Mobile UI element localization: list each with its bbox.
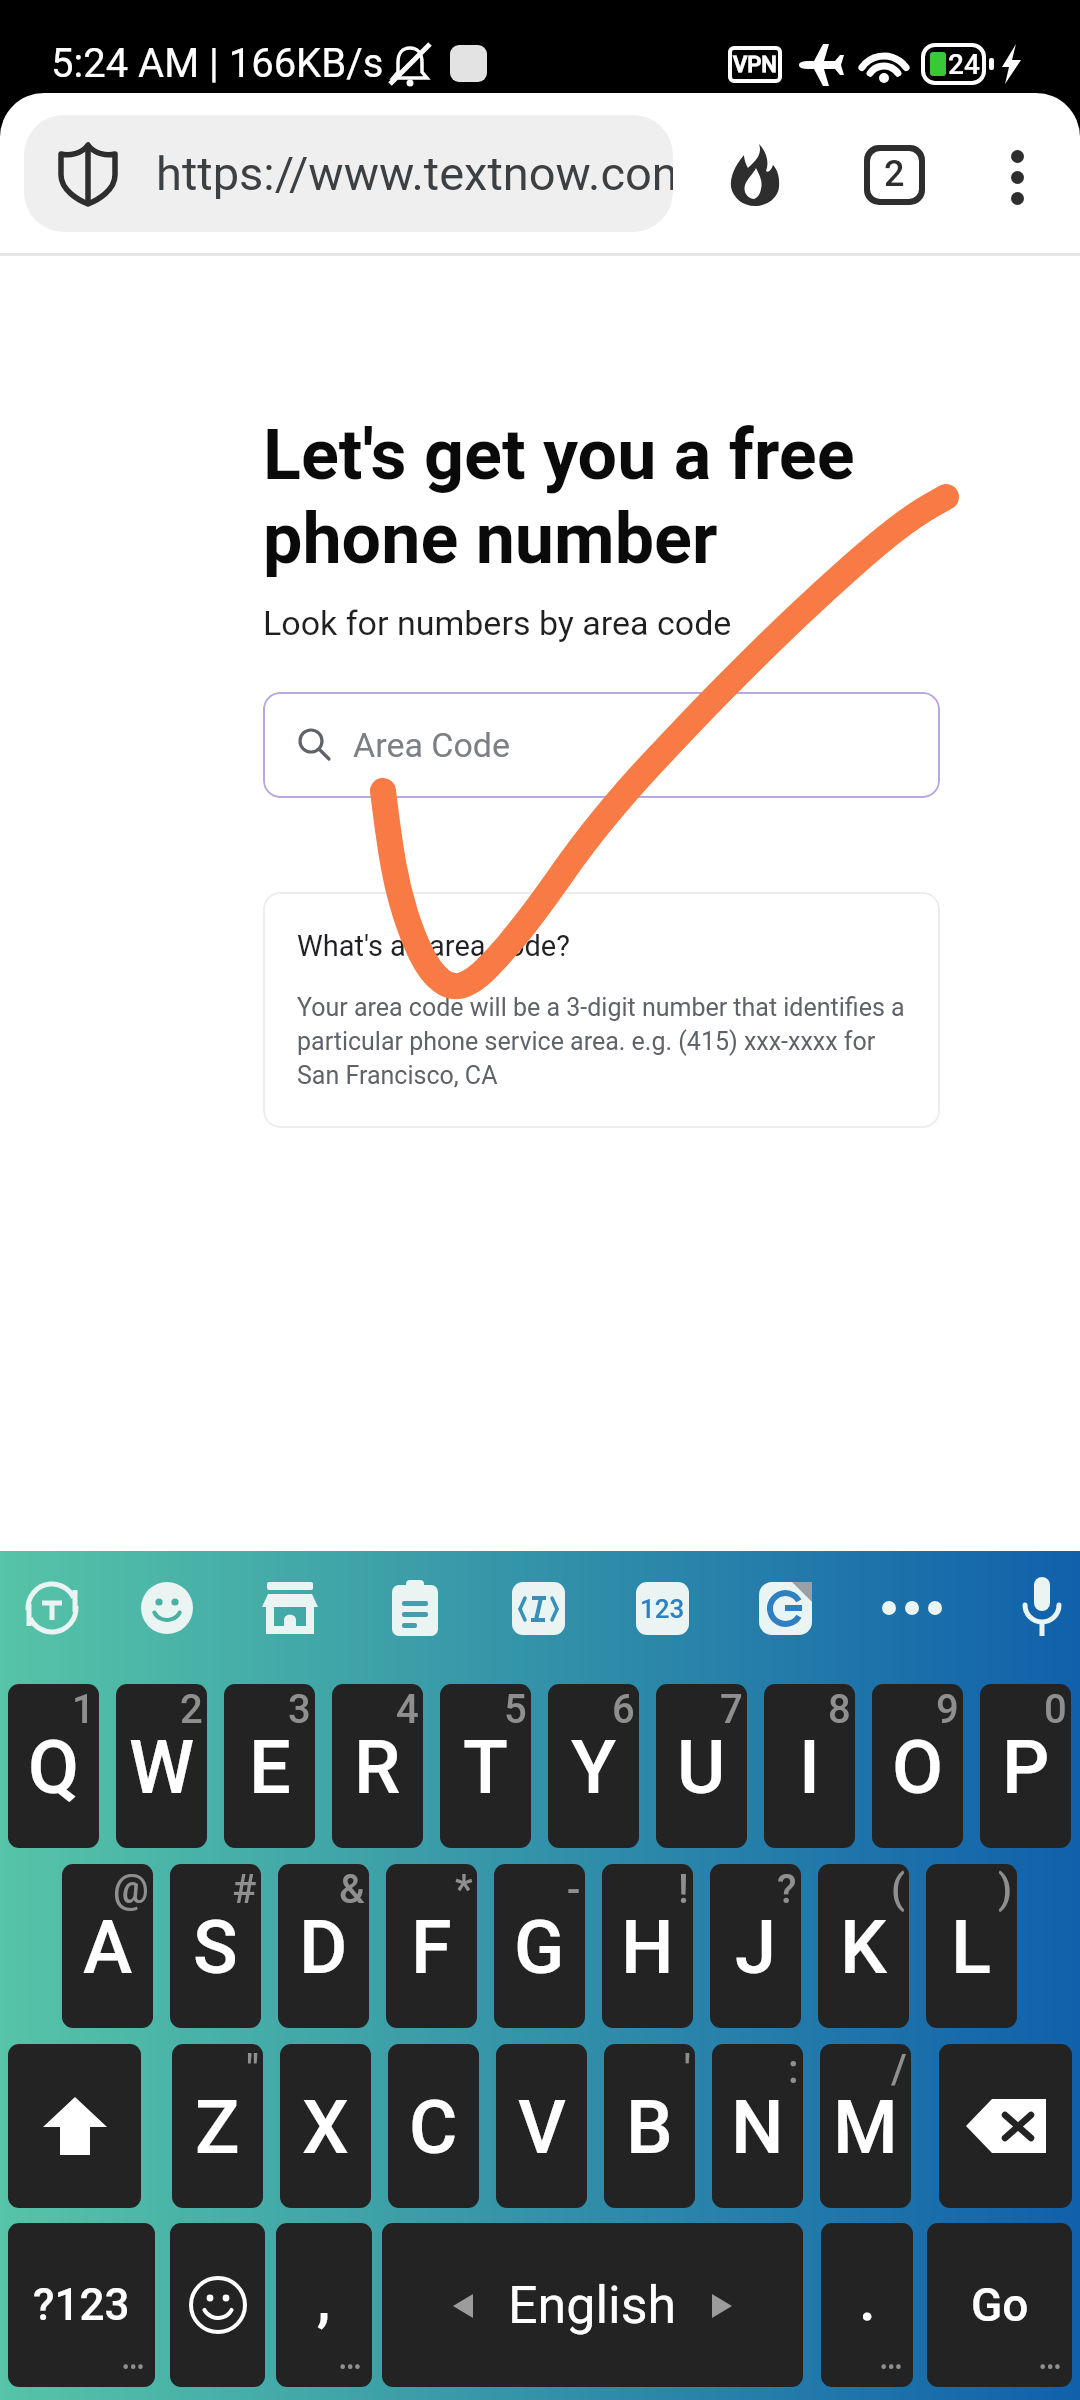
- button[interactable]: 0: [980, 1684, 1071, 1848]
- staticText: 9: [936, 1686, 959, 1733]
- button[interactable]: Store: [234, 1552, 346, 1664]
- staticText: 1: [72, 1686, 95, 1733]
- button[interactable]: 1: [8, 1684, 99, 1848]
- button[interactable]: ,: [276, 2223, 372, 2387]
- button[interactable]: ?: [710, 1864, 801, 2028]
- staticText: Q: [28, 1724, 80, 1811]
- staticText: 24: [948, 48, 980, 81]
- staticText: #: [232, 1866, 257, 1913]
- staticText: X: [302, 2084, 349, 2171]
- staticText: Let's get you a free phone number: [263, 414, 855, 580]
- button[interactable]: -: [494, 1864, 585, 2028]
- staticText: B: [626, 2084, 673, 2171]
- staticText: D: [299, 1904, 348, 1991]
- button[interactable]: Area Code: [263, 692, 940, 798]
- button[interactable]: 5: [440, 1684, 531, 1848]
- button[interactable]: More: [856, 1552, 968, 1664]
- staticText: 2: [884, 153, 905, 195]
- button[interactable]: 3: [224, 1684, 315, 1848]
- button[interactable]: 9: [872, 1684, 963, 1848]
- staticText: K: [840, 1904, 887, 1991]
- staticText: ): [998, 1866, 1013, 1913]
- button[interactable]: (: [818, 1864, 909, 2028]
- button[interactable]: Text editing: [482, 1552, 594, 1664]
- staticText: E: [249, 1724, 291, 1811]
- staticText: O: [892, 1724, 944, 1811]
- button[interactable]: Emoji keyboard: [170, 2223, 265, 2387]
- button[interactable]: ): [926, 1864, 1017, 2028]
- button[interactable]: :: [712, 2044, 803, 2208]
- staticText: 4: [396, 1686, 419, 1733]
- staticText: ?123: [33, 2279, 130, 2331]
- button[interactable]: 7: [656, 1684, 747, 1848]
- staticText: S: [193, 1904, 238, 1991]
- staticText: N: [731, 2084, 784, 2171]
- button[interactable]: #: [170, 1864, 261, 2028]
- button[interactable]: English: [382, 2223, 803, 2387]
- button[interactable]: C: [388, 2044, 479, 2208]
- button[interactable]: 8: [764, 1684, 855, 1848]
- button[interactable]: Backspace: [939, 2044, 1072, 2208]
- staticText: Z: [195, 2084, 240, 2171]
- staticText: ,: [317, 2264, 331, 2334]
- staticText: •••: [880, 2355, 903, 2381]
- button[interactable]: 6: [548, 1684, 639, 1848]
- button[interactable]: More options: [961, 121, 1073, 233]
- staticText: :: [788, 2046, 799, 2093]
- button[interactable]: Turbo mode: [699, 119, 811, 231]
- button[interactable]: !: [602, 1864, 693, 2028]
- button[interactable]: V: [496, 2044, 587, 2208]
- button[interactable]: /: [820, 2044, 911, 2208]
- staticText: •••: [1039, 2355, 1062, 2381]
- staticText: 3: [288, 1686, 311, 1733]
- button[interactable]: &: [278, 1864, 369, 2028]
- staticText: L: [951, 1904, 992, 1991]
- staticText: 0: [1044, 1686, 1067, 1733]
- staticText: *: [455, 1866, 473, 1913]
- button[interactable]: Switch tabs: [838, 119, 950, 231]
- button[interactable]: Theme: [0, 1552, 108, 1664]
- staticText: 2: [180, 1686, 203, 1733]
- staticText: 6: [612, 1686, 635, 1733]
- staticText: &: [339, 1866, 365, 1913]
- staticText: G: [514, 1904, 565, 1991]
- button[interactable]: ": [172, 2044, 263, 2208]
- staticText: https://www.textnow.con: [156, 146, 673, 201]
- button[interactable]: ': [604, 2044, 695, 2208]
- staticText: -: [567, 1866, 581, 1913]
- staticText: (: [891, 1866, 905, 1913]
- staticText: F: [411, 1904, 452, 1991]
- staticText: P: [1002, 1724, 1050, 1811]
- button[interactable]: ?123: [8, 2223, 155, 2387]
- staticText: @: [113, 1866, 149, 1913]
- staticText: 7: [720, 1686, 743, 1733]
- button[interactable]: 2: [116, 1684, 207, 1848]
- staticText: What's an area code?: [297, 929, 570, 963]
- staticText: English: [508, 2275, 677, 2336]
- staticText: W: [129, 1724, 195, 1811]
- staticText: ": [246, 2046, 259, 2093]
- staticText: VPN: [733, 52, 777, 78]
- button[interactable]: Numbers: [606, 1552, 718, 1664]
- button[interactable]: Clipboard: [359, 1552, 471, 1664]
- button[interactable]: Translate: [729, 1552, 841, 1664]
- button[interactable]: 4: [332, 1684, 423, 1848]
- button[interactable]: Shift: [8, 2044, 141, 2208]
- staticText: !: [678, 1866, 689, 1913]
- staticText: •••: [339, 2355, 362, 2381]
- button[interactable]: .: [821, 2223, 913, 2387]
- button[interactable]: Voice input: [986, 1552, 1080, 1664]
- staticText: C: [409, 2084, 458, 2171]
- staticText: Y: [571, 1724, 617, 1811]
- staticText: A: [83, 1904, 133, 1991]
- button[interactable]: Go: [927, 2223, 1072, 2387]
- staticText: Go: [971, 2278, 1029, 2332]
- staticText: 123: [640, 1594, 685, 1624]
- staticText: J: [735, 1904, 777, 1991]
- button[interactable]: Emoji: [111, 1552, 223, 1664]
- staticText: Your area code will be a 3-digit number …: [297, 993, 911, 1090]
- button[interactable]: https://www.textnow.con: [24, 115, 673, 232]
- button[interactable]: *: [386, 1864, 477, 2028]
- button[interactable]: @: [62, 1864, 153, 2028]
- button[interactable]: X: [280, 2044, 371, 2208]
